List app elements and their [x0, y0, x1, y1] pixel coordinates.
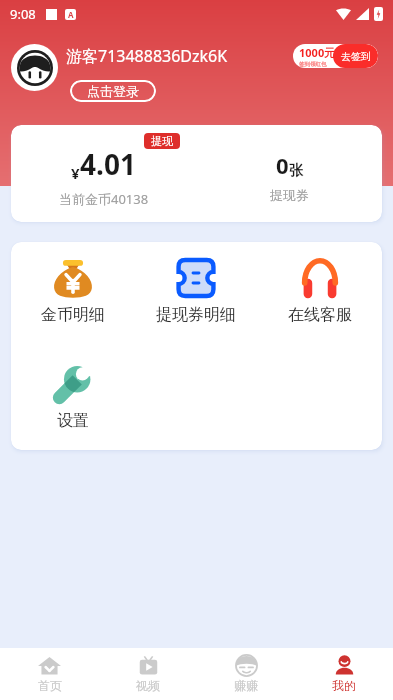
staticText: 提现券	[270, 187, 309, 203]
staticText: 签到领红包	[299, 61, 327, 68]
staticText: 1000元	[299, 45, 336, 60]
button[interactable]: 设置	[11, 363, 134, 431]
button[interactable]: 金币明细	[11, 257, 134, 325]
staticText: A	[68, 9, 74, 20]
button[interactable]: 首页	[0, 648, 99, 700]
staticText: 游客713488836Dzk6K	[66, 45, 228, 67]
staticText: 赚赚	[234, 678, 258, 693]
staticText: 9:08	[10, 5, 36, 23]
staticText: 0	[276, 150, 289, 180]
staticText: 设置	[57, 411, 89, 431]
button[interactable]: 提现券明细	[134, 257, 258, 325]
staticText: 提现券明细	[156, 305, 236, 325]
staticText: 点击登录	[87, 83, 139, 99]
button[interactable]: 在线客服	[258, 257, 382, 325]
button[interactable]: 提现	[144, 133, 180, 149]
button[interactable]: 点击登录	[70, 80, 156, 102]
staticText: 去签到	[341, 50, 371, 63]
staticText: 视频	[136, 678, 160, 693]
staticText: 首页	[38, 678, 62, 693]
staticText: 金币明细	[41, 305, 105, 325]
staticText: 在线客服	[288, 305, 352, 325]
staticText: 张	[289, 162, 303, 180]
staticText: 提现	[151, 134, 173, 148]
button[interactable]: 视频	[99, 648, 197, 700]
staticText: 4.01	[80, 145, 136, 183]
staticText: 我的	[332, 678, 356, 693]
button[interactable]: 我的	[295, 648, 393, 700]
button[interactable]: 赚赚	[197, 648, 295, 700]
button[interactable]: 1000元	[293, 44, 378, 68]
staticText: ¥	[71, 163, 80, 183]
staticText: 当前金币40138	[59, 190, 149, 208]
